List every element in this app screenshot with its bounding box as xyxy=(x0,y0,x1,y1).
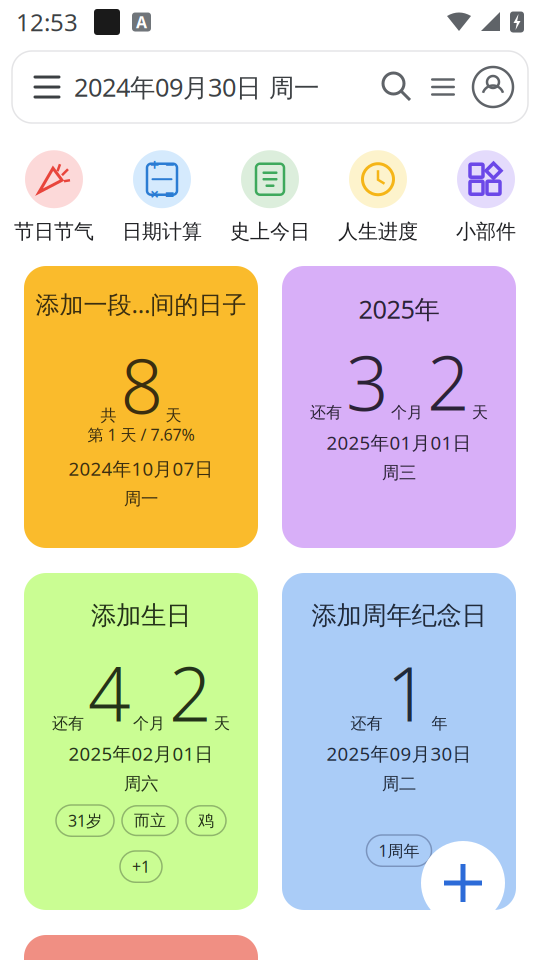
staticText: 12:53 xyxy=(16,6,78,38)
staticText: 年 xyxy=(431,713,447,733)
staticText: 天 xyxy=(214,713,230,733)
button[interactable]: 人生进度 xyxy=(324,150,432,244)
staticText: 还有 xyxy=(310,402,342,422)
staticText: 共 xyxy=(100,405,116,425)
staticText: 3 xyxy=(346,332,389,431)
button[interactable]: View options xyxy=(420,52,466,122)
staticText: 8 xyxy=(120,335,163,434)
button[interactable]: + xyxy=(108,150,216,244)
staticText: 1周年 xyxy=(378,840,419,861)
button[interactable]: Menu xyxy=(20,52,74,122)
staticText: +1 xyxy=(132,856,150,877)
staticText: 2025年09月30日 xyxy=(326,741,471,766)
staticText: 小部件 xyxy=(456,219,516,244)
staticText: 还有 xyxy=(350,713,382,733)
staticText: 周一 xyxy=(124,488,158,509)
staticText: 第 1 天 / 7.67% xyxy=(87,424,194,445)
button[interactable]: 小部件 xyxy=(432,150,540,244)
staticText: 4 xyxy=(88,643,131,742)
staticText: 添加周年纪念日 xyxy=(311,600,486,631)
staticText: 周二 xyxy=(382,773,416,794)
staticText: A xyxy=(136,11,147,33)
staticText: 添加一段…间的日子 xyxy=(35,288,246,320)
staticText: + xyxy=(150,154,159,175)
staticText: = xyxy=(165,183,174,204)
staticText: 2025年01月01日 xyxy=(326,430,471,455)
staticText: 个月 xyxy=(391,402,423,422)
staticText: 节日节气 xyxy=(14,219,94,244)
staticText: 1 xyxy=(386,643,429,742)
button[interactable]: 添加一段…间的日子 xyxy=(24,266,258,548)
staticText: 个月 xyxy=(133,713,165,733)
staticText: 天 xyxy=(472,402,488,422)
staticText: 2024年10月07日 xyxy=(68,456,213,481)
staticText: 周三 xyxy=(382,462,416,483)
staticText: 日期计算 xyxy=(122,219,202,244)
staticText: 天 xyxy=(165,405,181,425)
staticText: 而立 xyxy=(134,811,166,830)
button[interactable]: 史上今日 xyxy=(216,150,324,244)
button[interactable]: 添加生日 xyxy=(24,573,258,910)
staticText: 2 xyxy=(169,643,212,742)
staticText: 2025年02月01日 xyxy=(68,741,213,766)
staticText: 2024年09月30日 周一 xyxy=(74,70,319,104)
button[interactable]: 添加周年纪念日 xyxy=(282,573,516,910)
button[interactable]: Add xyxy=(421,841,505,925)
staticText: 史上今日 xyxy=(230,219,310,244)
staticText: 31岁 xyxy=(68,810,102,831)
staticText: 2 xyxy=(427,332,470,431)
staticText: 周六 xyxy=(124,773,158,794)
staticText: 鸡 xyxy=(198,811,214,830)
button[interactable]: Account xyxy=(466,52,520,122)
button[interactable]: 节日节气 xyxy=(0,150,108,244)
staticText: 人生进度 xyxy=(338,219,418,244)
staticText: 还有 xyxy=(52,713,84,733)
staticText: − xyxy=(165,154,174,175)
button[interactable]: Search xyxy=(374,52,420,122)
staticText: 添加生日 xyxy=(91,600,191,631)
staticText: 2025年 xyxy=(358,292,439,326)
staticText: × xyxy=(150,183,159,204)
button[interactable]: 2025年 xyxy=(282,266,516,548)
